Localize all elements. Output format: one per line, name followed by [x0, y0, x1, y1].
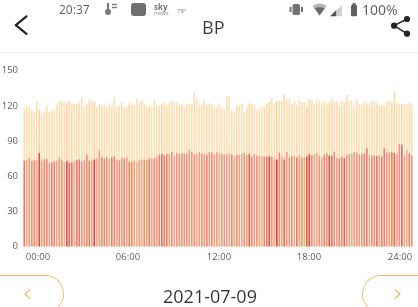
button[interactable]: Back	[0, 18, 42, 52]
staticText: 00:00	[18, 250, 58, 263]
staticText: 2021-07-09	[163, 284, 257, 307]
button[interactable]: Next day	[362, 275, 418, 307]
staticText: 78°	[177, 7, 187, 15]
staticText: 30	[0, 204, 18, 217]
staticText: news	[154, 9, 169, 17]
staticText: 60	[0, 169, 18, 182]
staticText: sky	[154, 1, 168, 12]
staticText: 90	[0, 134, 18, 147]
staticText: 20:37	[59, 1, 90, 17]
staticText: 100%	[362, 0, 398, 18]
staticText: 24:00	[380, 250, 418, 263]
button[interactable]: Previous day	[0, 275, 64, 307]
staticText: 12:00	[199, 250, 239, 263]
staticText: 18:00	[289, 250, 329, 263]
staticText: 120	[0, 99, 18, 112]
staticText: 150	[0, 63, 18, 76]
staticText: 0	[0, 239, 18, 252]
button[interactable]: Share	[378, 18, 418, 52]
staticText: BP	[202, 15, 225, 40]
staticText: 06:00	[108, 250, 148, 263]
